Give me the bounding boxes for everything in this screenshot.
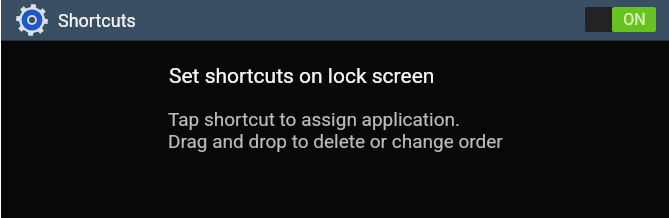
button[interactable]: Settings [16,4,48,36]
staticText: ON [623,10,646,29]
button[interactable]: Shortcuts on/off [585,7,656,32]
staticText: Tap shortcut to assign application. Drag… [168,108,503,152]
staticText: Shortcuts [58,10,136,31]
staticText: Set shortcuts on lock screen [169,64,435,89]
